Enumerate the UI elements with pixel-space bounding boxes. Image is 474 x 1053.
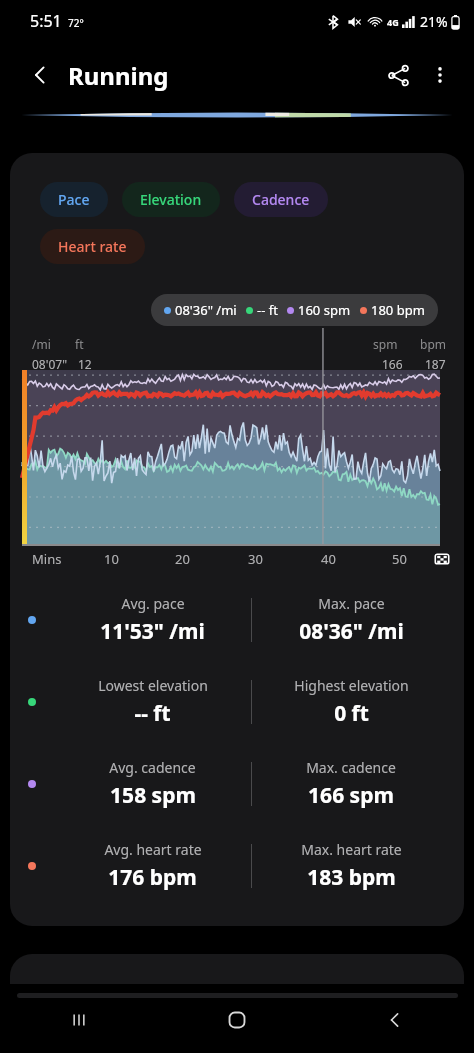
button[interactable]: Pace	[40, 182, 108, 217]
staticText: 21%	[420, 12, 448, 31]
staticText: 72°	[68, 16, 84, 30]
button[interactable]: Avg. cadence	[10, 758, 464, 810]
button[interactable]: Back	[316, 987, 474, 1053]
staticText: 4G	[387, 16, 399, 28]
staticText: 12	[78, 356, 92, 372]
staticText: spm	[373, 336, 398, 352]
staticText: 10	[104, 550, 119, 568]
staticText: -- ft	[134, 699, 171, 728]
staticText: -- ft	[257, 301, 278, 319]
staticText: 180 bpm	[371, 301, 425, 319]
staticText: 20	[175, 550, 190, 568]
button[interactable]: Elevation	[122, 182, 220, 217]
button[interactable]: Home	[158, 987, 316, 1053]
staticText: Pace	[58, 190, 90, 209]
staticText: Mins	[32, 550, 62, 568]
button[interactable]: Back	[18, 53, 62, 97]
button[interactable]: Cadence	[234, 182, 328, 217]
staticText: Avg. pace	[121, 594, 185, 613]
staticText: 166 spm	[308, 781, 394, 810]
button[interactable]: More options	[420, 55, 460, 95]
staticText: Elevation	[140, 190, 202, 209]
staticText: 158 spm	[110, 781, 196, 810]
staticText: 08'36" /mi	[175, 301, 237, 319]
staticText: 187	[425, 356, 446, 372]
button[interactable]: Share	[376, 53, 420, 97]
staticText: 40	[321, 550, 336, 568]
staticText: /mi	[32, 336, 51, 352]
staticText: Max. pace	[318, 594, 385, 613]
button[interactable]	[10, 954, 464, 984]
staticText: bpm	[420, 336, 446, 352]
staticText: 50	[392, 550, 407, 568]
staticText: Max. cadence	[306, 758, 396, 777]
staticText: 5:51	[30, 10, 62, 32]
staticText: Lowest elevation	[98, 676, 208, 695]
staticText: 08'36" /mi	[299, 617, 404, 646]
staticText: 160 spm	[298, 301, 351, 319]
button[interactable]: Avg. pace	[10, 594, 464, 646]
staticText: 08'07"	[32, 356, 68, 372]
staticText: Avg. heart rate	[104, 840, 202, 859]
staticText: 166	[382, 356, 403, 372]
staticText: 0 ft	[334, 699, 369, 728]
staticText: 11'53" /mi	[100, 617, 205, 646]
button[interactable]: Heart rate	[40, 229, 145, 264]
button[interactable]: Lowest elevation	[10, 676, 464, 728]
staticText: Max. heart rate	[301, 840, 402, 859]
button[interactable]: 08'36" /mi	[151, 294, 438, 326]
staticText: ft	[75, 336, 84, 352]
button[interactable]: Recents	[0, 987, 158, 1053]
staticText: Highest elevation	[294, 676, 409, 695]
button[interactable]: Avg. heart rate	[10, 840, 464, 892]
staticText: 176 bpm	[108, 863, 197, 892]
staticText: Avg. cadence	[109, 758, 196, 777]
staticText: Running	[68, 59, 169, 92]
staticText: Cadence	[252, 190, 310, 209]
staticText: 183 bpm	[307, 863, 396, 892]
staticText: Heart rate	[58, 237, 127, 256]
staticText: 30	[248, 550, 263, 568]
